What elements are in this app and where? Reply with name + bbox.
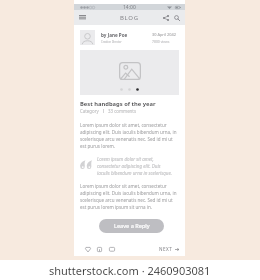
staticText: 14:00	[123, 4, 136, 10]
staticText: by Jane Poe	[101, 32, 128, 38]
staticText: Lorem ipsum dolor sit amet, consectetur …	[80, 183, 179, 210]
staticText: Lorem ipsum dolor sit amet, consectetur …	[80, 122, 179, 149]
staticText: Creative Director	[101, 40, 122, 44]
button[interactable]: Leave a Reply	[99, 219, 164, 233]
button[interactable]: Share	[160, 12, 171, 23]
staticText: BLOG	[120, 14, 139, 22]
button[interactable]: NEXT	[157, 244, 181, 254]
staticText: Category	[80, 108, 99, 114]
button[interactable]: Comment	[106, 244, 117, 255]
staticText: Leave a Reply	[114, 222, 150, 230]
button[interactable]: Bookmark	[94, 244, 105, 255]
staticText: Lorem ipsum dolor sit amet, consectetur …	[97, 156, 173, 176]
staticText: 33 comments	[108, 108, 137, 114]
staticText: NEXT	[159, 246, 173, 252]
staticText: shutterstock.com · 2460903081	[49, 263, 211, 278]
button[interactable]: Like	[82, 244, 93, 255]
staticText: 30 April 2042	[152, 32, 176, 37]
staticText: Best handbags of the year	[80, 100, 156, 108]
button[interactable]: Menu	[77, 12, 88, 23]
staticText: 7800 views	[152, 39, 170, 44]
button[interactable]: Search	[171, 12, 182, 23]
